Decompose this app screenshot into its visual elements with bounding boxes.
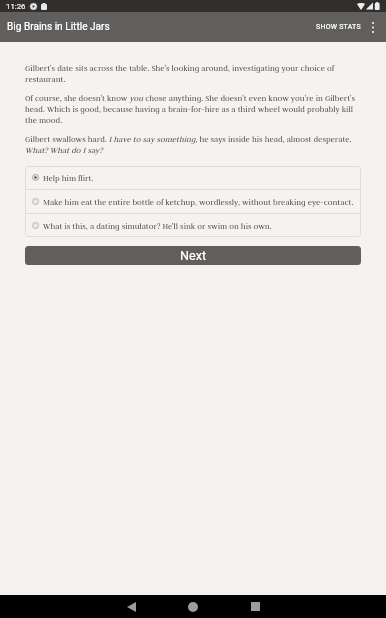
button[interactable]: Home (162, 595, 224, 618)
button[interactable]: What is this, a dating simulator? He'll … (25, 214, 361, 237)
staticText: Next (180, 248, 207, 263)
staticText: What is this, a dating simulator? He'll … (43, 221, 272, 231)
staticText: Gilbert swallows hard. I have to say som… (25, 134, 361, 155)
button[interactable]: Back (100, 595, 162, 618)
staticText: Gilbert's date sits across the table. Sh… (25, 63, 361, 84)
staticText: Make him eat the entire bottle of ketchu… (43, 197, 354, 207)
button[interactable]: SHOW STATS (306, 17, 362, 37)
button[interactable]: Help him flirt. (25, 166, 361, 189)
button[interactable]: Recents (224, 595, 286, 618)
staticText: Of course, she doesn't know you chose an… (25, 93, 361, 125)
staticText: Big Brains in Little Jars (7, 21, 110, 33)
staticText: Help him flirt. (43, 173, 94, 183)
staticText: 11:26 (6, 2, 26, 11)
staticText: SHOW STATS (316, 23, 361, 31)
button[interactable]: More options (362, 12, 384, 42)
button[interactable]: Next (25, 246, 361, 265)
button[interactable]: Make him eat the entire bottle of ketchu… (25, 190, 361, 213)
